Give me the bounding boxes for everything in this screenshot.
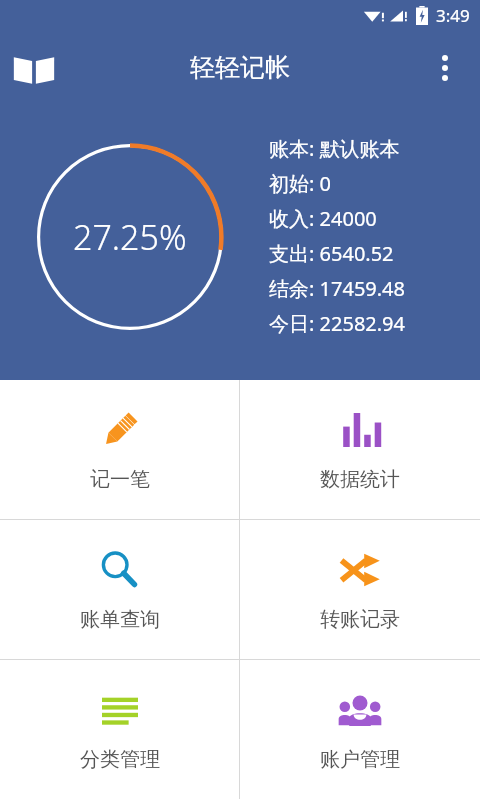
- staticText: 转账记录: [320, 607, 400, 632]
- staticText: 账本: 默认账本: [269, 135, 400, 162]
- button[interactable]: 账单查询: [0, 520, 239, 659]
- staticText: 账户管理: [320, 747, 400, 772]
- staticText: 记一笔: [90, 467, 150, 492]
- staticText: 初始: 0: [269, 170, 331, 197]
- staticText: 27.25%: [73, 214, 187, 260]
- button[interactable]: 账户管理: [240, 660, 480, 799]
- staticText: 分类管理: [80, 747, 160, 772]
- staticText: 数据统计: [320, 467, 400, 492]
- button[interactable]: Account book: [10, 44, 58, 92]
- staticText: 账单查询: [80, 607, 160, 632]
- staticText: 收入: 24000: [269, 205, 377, 232]
- staticText: 3:49: [436, 4, 470, 27]
- button[interactable]: 数据统计: [240, 380, 480, 519]
- button[interactable]: More options: [422, 45, 468, 91]
- staticText: 结余: 17459.48: [269, 275, 405, 302]
- staticText: 今日: 22582.94: [269, 310, 405, 337]
- staticText: 支出: 6540.52: [269, 240, 394, 267]
- button[interactable]: 分类管理: [0, 660, 239, 799]
- button[interactable]: 转账记录: [240, 520, 480, 659]
- button[interactable]: 记一笔: [0, 380, 239, 519]
- staticText: 轻轻记帐: [190, 52, 290, 83]
